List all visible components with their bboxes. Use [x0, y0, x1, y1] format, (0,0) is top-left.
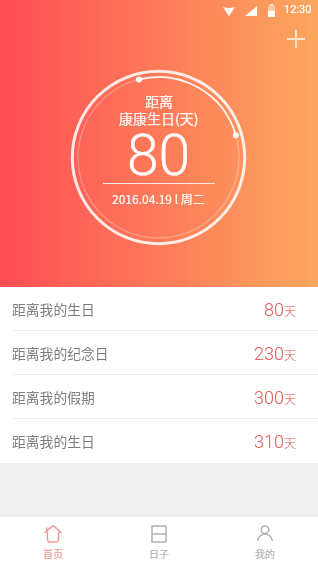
staticText: 距离我的假期 [12, 387, 95, 407]
button[interactable]: 距离我的假期 [0, 375, 318, 419]
button[interactable]: 首页 [0, 517, 106, 566]
staticText: 距离我的生日 [12, 299, 95, 319]
staticText: 天 [284, 390, 297, 407]
staticText: 我的 [255, 546, 275, 560]
button[interactable]: Add [276, 19, 316, 59]
staticText: 首页 [43, 546, 63, 560]
button[interactable]: 日子 [106, 517, 212, 566]
staticText: 300 [254, 387, 284, 408]
staticText: 天 [284, 346, 297, 363]
staticText: 310 [254, 431, 284, 452]
staticText: 12:30 [284, 3, 312, 16]
staticText: 天 [284, 302, 297, 319]
staticText: 距离我的生日 [12, 431, 95, 451]
button[interactable]: 距离我的生日 [0, 287, 318, 331]
button[interactable]: 我的 [212, 517, 318, 566]
staticText: 天 [284, 434, 297, 451]
staticText: 80 [264, 299, 284, 320]
staticText: 日子 [149, 546, 169, 560]
staticText: 230 [254, 343, 284, 364]
staticText: 80 [127, 122, 191, 189]
button[interactable]: 距离我的纪念日 [0, 331, 318, 375]
staticText: 距离 [145, 91, 173, 111]
staticText: 2016.04.19 l 周二 [112, 190, 205, 207]
staticText: 距离我的纪念日 [12, 343, 109, 363]
staticText: 康康生日(天) [119, 108, 199, 128]
button[interactable]: 距离我的生日 [0, 419, 318, 463]
